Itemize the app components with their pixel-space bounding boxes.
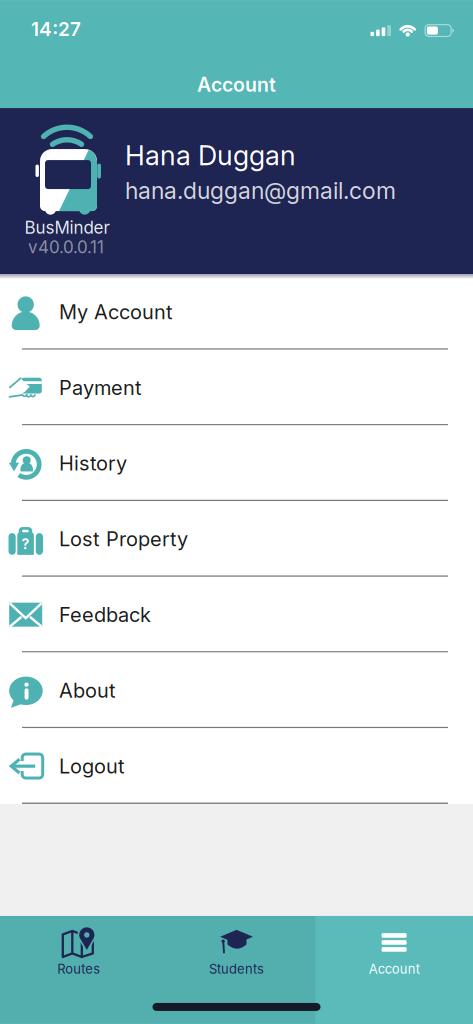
staticText: ? [22, 536, 30, 552]
staticText: Students [209, 961, 264, 977]
button[interactable]: History [0, 425, 473, 501]
button[interactable]: Logout [0, 728, 473, 804]
staticText: 14:27 [31, 18, 81, 41]
staticText: v40.0.0.11 [28, 237, 104, 257]
button[interactable]: Students [158, 916, 315, 1024]
staticText: Hana Duggan [125, 139, 296, 172]
button[interactable]: About [0, 652, 473, 728]
button[interactable]: Payment [0, 350, 473, 425]
staticText: Payment [59, 375, 142, 400]
staticText: My Account [59, 300, 173, 324]
staticText: History [59, 451, 127, 475]
staticText: Feedback [59, 603, 151, 627]
staticText: Logout [59, 754, 125, 778]
staticText: BusMinder [24, 217, 109, 238]
staticText: hana.duggan@gmail.com [125, 177, 396, 204]
staticText: Account [369, 961, 420, 977]
button[interactable]: Routes [0, 916, 158, 1024]
staticText: Routes [57, 961, 100, 977]
staticText: Account [197, 73, 276, 96]
button[interactable]: Account [315, 916, 473, 1024]
staticText: Lost Property [59, 527, 188, 551]
button[interactable]: ? [0, 501, 473, 577]
staticText: About [59, 678, 116, 702]
button[interactable]: Feedback [0, 577, 473, 652]
button[interactable]: My Account [0, 274, 473, 350]
